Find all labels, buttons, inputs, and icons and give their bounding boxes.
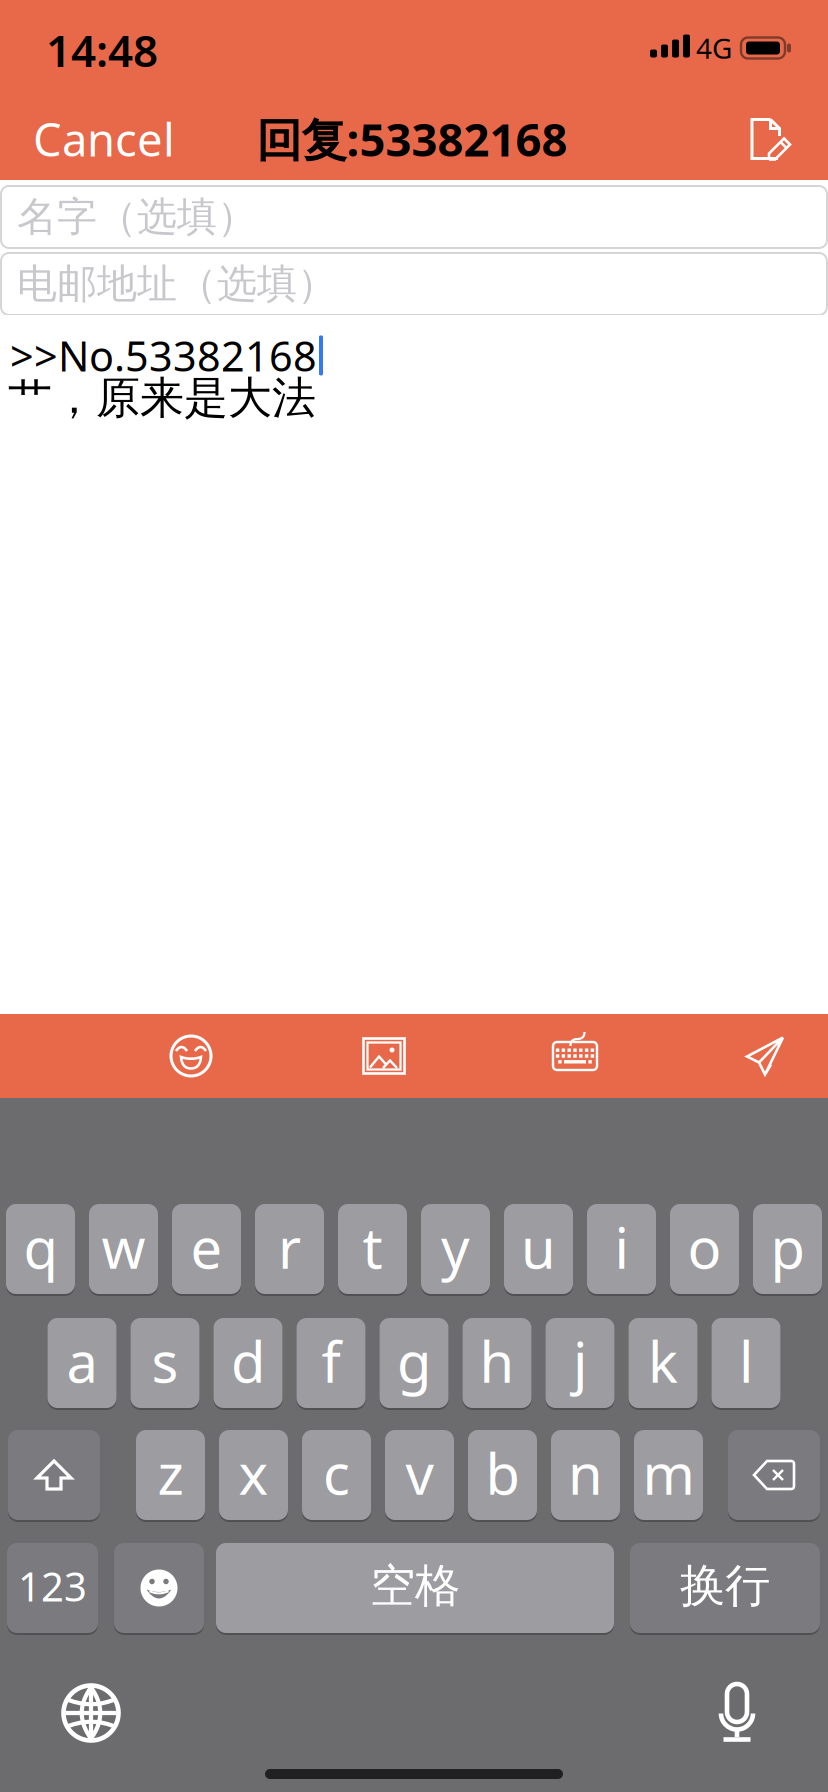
button[interactable]: m xyxy=(634,1430,703,1520)
button[interactable]: z xyxy=(136,1430,205,1520)
staticText: s xyxy=(151,1324,178,1398)
staticText: 换行 xyxy=(680,1558,770,1614)
button[interactable]: j xyxy=(545,1318,614,1408)
button[interactable]: x xyxy=(219,1430,288,1520)
button[interactable] xyxy=(362,1034,406,1078)
staticText: x xyxy=(238,1436,268,1510)
button[interactable]: k xyxy=(628,1318,697,1408)
staticText: 回复:53382168 xyxy=(256,109,567,169)
staticText: d xyxy=(231,1324,265,1398)
staticText: Cancel xyxy=(33,109,175,169)
staticText: k xyxy=(648,1324,678,1398)
staticText: e xyxy=(190,1210,222,1284)
button[interactable] xyxy=(114,1543,204,1633)
button[interactable]: 空格 xyxy=(216,1543,614,1633)
button[interactable] xyxy=(717,1683,757,1743)
button[interactable]: u xyxy=(504,1204,573,1294)
button[interactable]: l xyxy=(711,1318,780,1408)
staticText: f xyxy=(321,1324,340,1398)
button[interactable]: p xyxy=(753,1204,822,1294)
button[interactable]: q xyxy=(6,1204,75,1294)
button[interactable] xyxy=(169,1034,213,1078)
staticText: j xyxy=(573,1324,587,1398)
staticText: u xyxy=(521,1210,556,1284)
staticText: a xyxy=(66,1324,97,1398)
staticText: >>No.53382168 xyxy=(10,328,317,383)
staticText: v xyxy=(405,1436,433,1510)
staticText: q xyxy=(23,1210,57,1284)
button[interactable]: 电邮地址（选填） xyxy=(0,253,828,315)
button[interactable]: o xyxy=(670,1204,739,1294)
staticText: z xyxy=(157,1436,183,1510)
staticText: o xyxy=(687,1210,721,1284)
button[interactable]: i xyxy=(587,1204,656,1294)
button[interactable] xyxy=(746,1036,784,1075)
button[interactable]: 换行 xyxy=(630,1543,820,1633)
button[interactable]: s xyxy=(130,1318,199,1408)
staticText: c xyxy=(323,1436,350,1510)
button[interactable]: n xyxy=(551,1430,620,1520)
button[interactable]: d xyxy=(213,1318,282,1408)
staticText: 4G xyxy=(696,29,732,67)
button[interactable]: g xyxy=(379,1318,448,1408)
staticText: m xyxy=(642,1436,694,1510)
button[interactable] xyxy=(8,1430,100,1520)
staticText: r xyxy=(278,1210,301,1284)
button[interactable] xyxy=(728,1430,820,1520)
button[interactable]: f xyxy=(296,1318,365,1408)
staticText: 14:48 xyxy=(46,21,158,79)
staticText: 电邮地址（选填） xyxy=(17,259,337,308)
staticText: g xyxy=(397,1324,431,1398)
button[interactable]: b xyxy=(468,1430,537,1520)
button[interactable]: t xyxy=(338,1204,407,1294)
staticText: 123 xyxy=(18,1559,87,1612)
staticText: 空格 xyxy=(370,1558,460,1614)
staticText: h xyxy=(479,1324,514,1398)
button[interactable]: Cancel xyxy=(33,109,175,169)
staticText: b xyxy=(485,1436,519,1510)
staticText: t xyxy=(362,1210,382,1284)
button[interactable]: 123 xyxy=(7,1543,98,1633)
staticText: w xyxy=(101,1210,145,1284)
staticText: l xyxy=(739,1324,753,1398)
button[interactable]: y xyxy=(421,1204,490,1294)
button[interactable]: w xyxy=(89,1204,158,1294)
staticText: i xyxy=(614,1210,628,1284)
staticText: 名字（选填） xyxy=(17,192,257,241)
button[interactable]: e xyxy=(172,1204,241,1294)
staticText: y xyxy=(441,1210,470,1284)
staticText: 艹，原来是大法 xyxy=(8,371,316,425)
button[interactable]: v xyxy=(385,1430,454,1520)
button[interactable] xyxy=(62,1684,120,1742)
button[interactable] xyxy=(750,117,790,161)
staticText: n xyxy=(568,1436,603,1510)
staticText: p xyxy=(770,1210,804,1284)
button[interactable]: h xyxy=(462,1318,531,1408)
button[interactable]: 名字（选填） xyxy=(0,186,828,248)
button[interactable] xyxy=(552,1033,598,1079)
button[interactable]: r xyxy=(255,1204,324,1294)
button[interactable]: c xyxy=(302,1430,371,1520)
button[interactable]: a xyxy=(47,1318,116,1408)
button[interactable]: >>No.53382168 xyxy=(0,315,828,1014)
